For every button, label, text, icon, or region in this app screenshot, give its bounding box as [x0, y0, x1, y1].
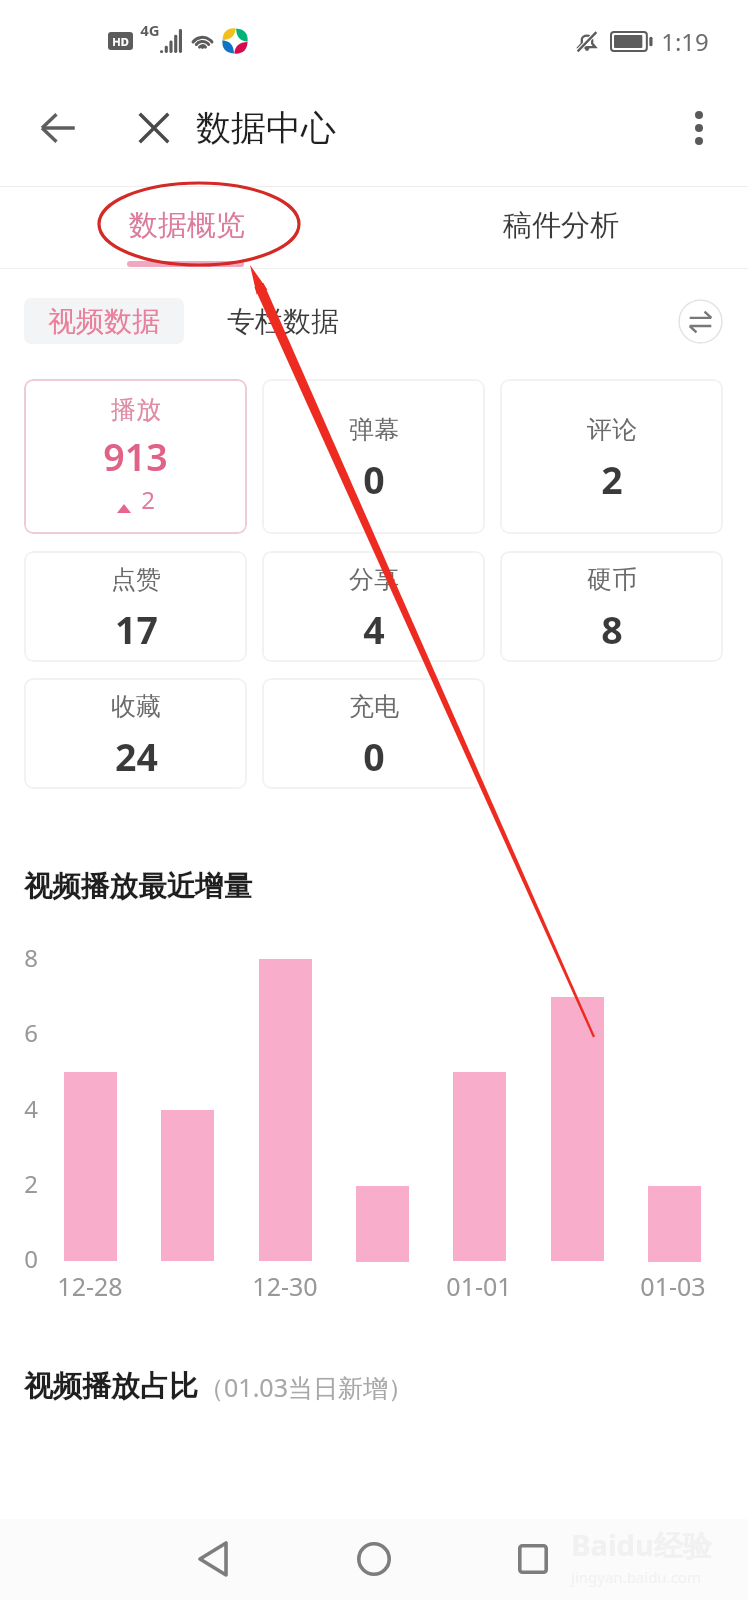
button[interactable]: 分享 [262, 551, 485, 662]
staticText: 4 [24, 1092, 38, 1120]
staticText: 12-28 [57, 1269, 123, 1303]
staticText: 点赞 [111, 564, 161, 595]
staticText: 视频数据 [48, 304, 160, 339]
staticText: 评论 [587, 414, 637, 445]
staticText: 弹幕 [349, 414, 399, 445]
staticText: HD [112, 34, 129, 49]
staticText: 0 [24, 1242, 38, 1270]
button[interactable]: Recent apps [493, 1519, 573, 1599]
staticText: 充电 [349, 691, 399, 722]
button[interactable]: 专栏数据 [203, 298, 363, 344]
staticText: Baidu经验 [571, 1525, 712, 1565]
staticText: 4 [363, 604, 385, 655]
staticText: 2 [141, 483, 155, 516]
button[interactable]: Switch data type [678, 299, 723, 344]
staticText: 视频播放最近增量 [24, 869, 252, 905]
button[interactable]: More options [671, 100, 727, 156]
staticText: 8 [601, 604, 623, 655]
staticText: 数据中心 [196, 106, 336, 150]
staticText: 收藏 [111, 691, 161, 722]
button[interactable]: Close [123, 97, 185, 159]
button[interactable]: Back [27, 97, 89, 159]
staticText: 8 [24, 941, 38, 969]
button[interactable]: 弹幕 [262, 379, 485, 534]
staticText: （01.03当日新增） [199, 1370, 413, 1404]
button[interactable]: 数据概览 [0, 187, 374, 268]
staticText: 2 [601, 454, 623, 505]
staticText: 专栏数据 [227, 304, 339, 339]
button[interactable]: 评论 [500, 379, 723, 534]
button[interactable]: 充电 [262, 678, 485, 789]
staticText: 0 [363, 454, 385, 505]
staticText: 分享 [349, 564, 399, 595]
button[interactable]: 视频数据 [24, 298, 184, 344]
staticText: 数据概览 [129, 207, 245, 244]
staticText: 播放 [111, 394, 161, 425]
staticText: jingyan.baidu.com [571, 1567, 701, 1587]
button[interactable]: 播放 [24, 379, 247, 534]
staticText: 913 [103, 431, 168, 482]
button[interactable]: 稿件分析 [374, 187, 748, 268]
staticText: 6 [24, 1016, 38, 1044]
staticText: 硬币 [587, 564, 637, 595]
staticText: 12-30 [252, 1269, 318, 1303]
staticText: 视频播放占比 [24, 1368, 198, 1405]
staticText: 2 [24, 1167, 38, 1195]
staticText: 17 [115, 604, 158, 655]
staticText: 24 [115, 731, 158, 782]
staticText: 4G [140, 20, 160, 40]
button[interactable]: 收藏 [24, 678, 247, 789]
staticText: 01-03 [640, 1269, 706, 1303]
staticText: 1:19 [661, 25, 709, 58]
staticText: 0 [363, 731, 385, 782]
staticText: 稿件分析 [503, 207, 619, 244]
button[interactable]: Back [173, 1519, 253, 1599]
button[interactable]: 点赞 [24, 551, 247, 662]
button[interactable]: Home [334, 1519, 414, 1599]
staticText: 01-01 [446, 1269, 512, 1303]
button[interactable]: 硬币 [500, 551, 723, 662]
